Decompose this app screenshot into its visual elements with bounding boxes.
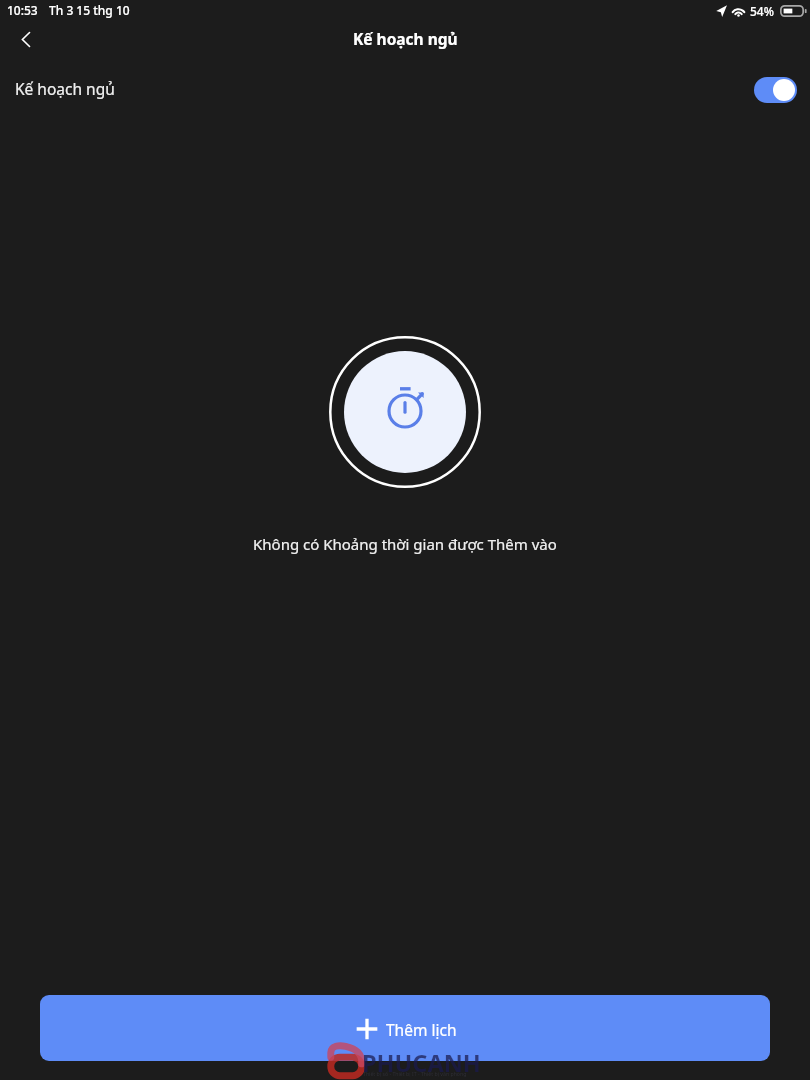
staticText: 10:53 [7,2,38,18]
staticText: Không có Khoảng thời gian được Thêm vào [253,534,557,554]
staticText: 54% [750,3,774,19]
button[interactable]: Back [2,16,50,62]
staticText: Thiết bị số - Thiết bị IT - Thiết bị văn… [363,1070,467,1077]
button[interactable]: Kế hoạch ngủ [0,67,810,109]
staticText: Kế hoạch ngủ [353,28,458,49]
staticText: Th 3 15 thg 10 [49,2,130,18]
staticText: PHUCANH [362,1047,481,1079]
button[interactable]: Thêm lịch [40,995,770,1061]
button[interactable]: Bật kế hoạch ngủ [754,77,797,103]
staticText: Kế hoạch ngủ [15,78,115,99]
staticText: Thêm lịch [386,1019,457,1040]
